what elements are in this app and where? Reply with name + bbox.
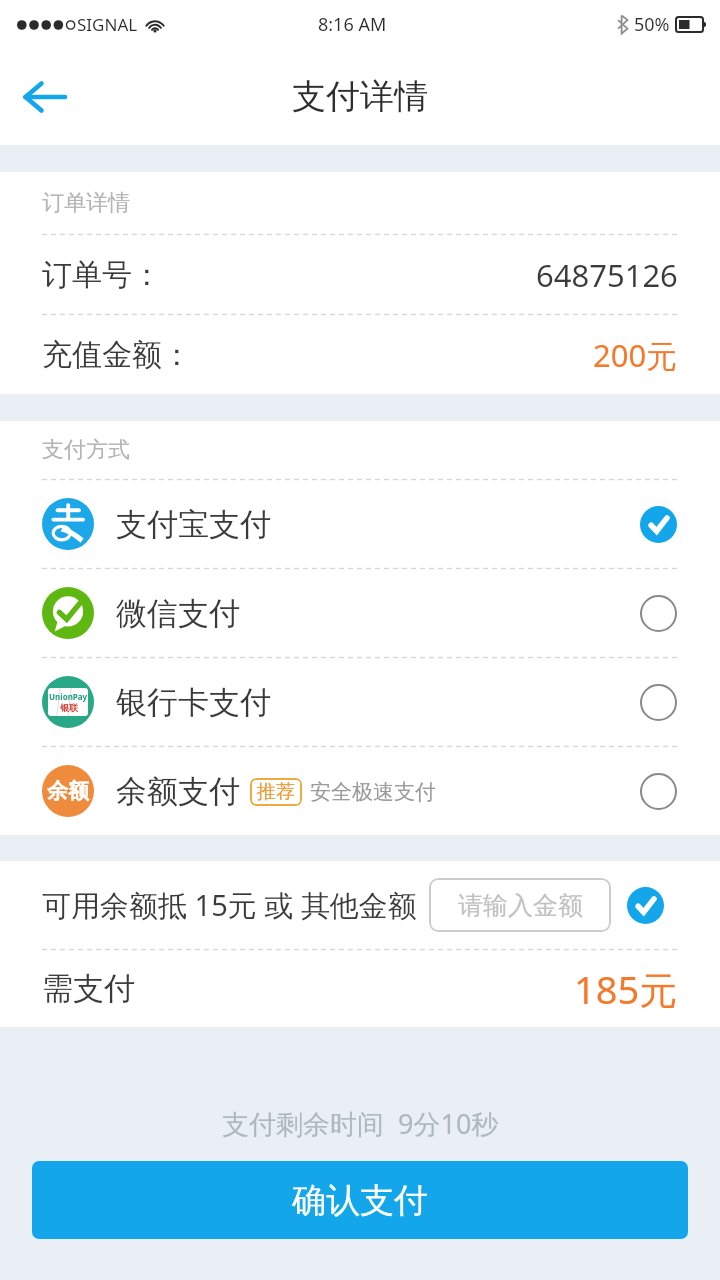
button[interactable]: 订单号：: [0, 235, 720, 314]
staticText: 200元: [593, 334, 678, 376]
staticText: 支付宝支付: [116, 505, 271, 544]
staticText: 50%: [634, 12, 670, 37]
staticText: 支付剩余时间 9分10秒: [222, 1105, 499, 1142]
staticText: 余额支付: [116, 772, 240, 811]
staticText: 需支付: [42, 969, 135, 1008]
button[interactable]: 支付宝支付: [0, 480, 720, 568]
staticText: 可用余额抵 15元 或 其他金额: [42, 885, 417, 925]
button[interactable]: 充值金额：: [0, 315, 720, 394]
staticText: 银联: [60, 702, 78, 713]
staticText: 请输入金额: [458, 890, 583, 921]
button[interactable]: 微信支付: [0, 569, 720, 657]
staticText: 推荐: [257, 780, 295, 804]
staticText: 8:16 AM: [318, 12, 387, 37]
staticText: 微信支付: [116, 594, 240, 633]
staticText: 支付方式: [42, 436, 130, 464]
staticText: 185元: [574, 963, 678, 1015]
staticText: 订单号：: [42, 256, 162, 294]
staticText: 支付详情: [292, 75, 428, 118]
button[interactable]: UnionPay: [0, 658, 720, 746]
staticText: UnionPay: [49, 691, 88, 702]
button[interactable]: 请输入金额: [429, 878, 611, 932]
staticText: 订单详情: [42, 189, 130, 217]
staticText: 余额: [47, 778, 89, 804]
button[interactable]: Back: [12, 65, 76, 129]
staticText: 充值金额：: [42, 336, 192, 374]
button[interactable]: 可用余额抵 15元 或 其他金额: [0, 861, 720, 949]
button[interactable]: 余额: [0, 747, 720, 835]
staticText: 银行卡支付: [116, 683, 271, 722]
button[interactable]: 确认支付: [32, 1161, 688, 1239]
staticText: 安全极速支付: [310, 779, 436, 805]
staticText: 64875126: [536, 254, 678, 296]
staticText: SIGNAL: [77, 13, 138, 36]
staticText: 确认支付: [292, 1179, 428, 1222]
